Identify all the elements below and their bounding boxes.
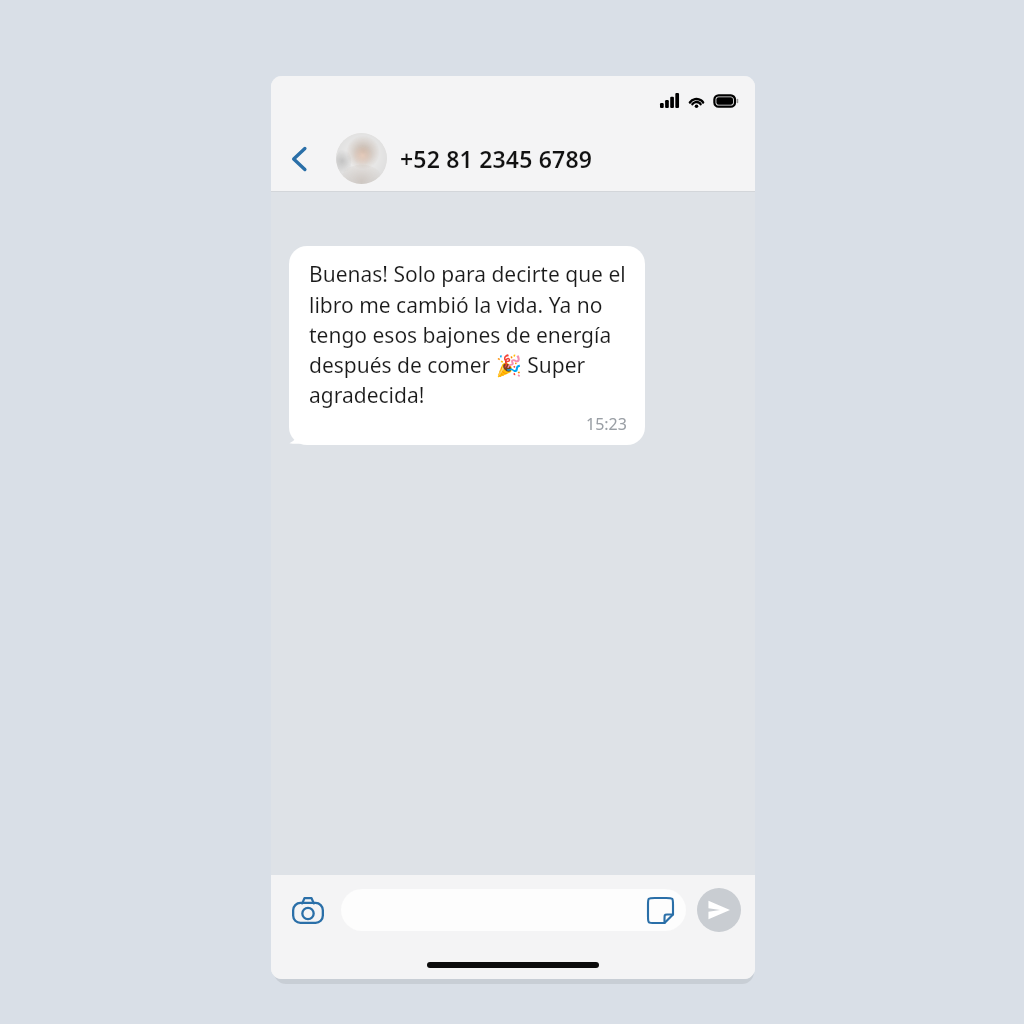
staticText: Buenas! Solo para decirte que el libro m… — [309, 260, 627, 409]
staticText: +52 81 2345 6789 — [400, 143, 593, 174]
button[interactable]: Buenas! Solo para decirte que el libro m… — [289, 246, 645, 445]
button[interactable]: Send — [697, 888, 741, 932]
button[interactable]: Camera — [285, 887, 331, 933]
button[interactable]: Contact photo — [336, 133, 387, 184]
button[interactable]: Stickers — [341, 889, 686, 931]
staticText: 15:23 — [586, 413, 627, 435]
button[interactable]: Stickers — [644, 894, 676, 926]
button[interactable]: Back — [279, 139, 319, 179]
